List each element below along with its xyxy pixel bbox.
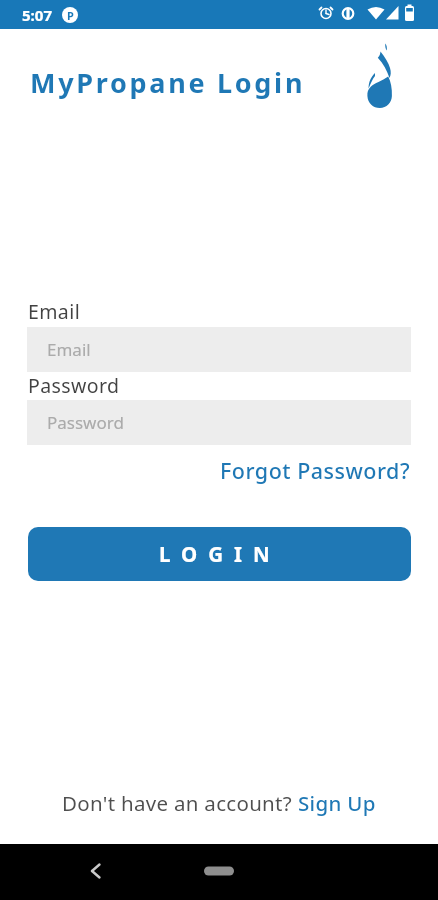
button[interactable]: Sign Up <box>298 789 376 817</box>
staticText: Sign Up <box>298 789 376 817</box>
staticText: Password <box>28 372 120 399</box>
button[interactable]: LOGIN <box>28 527 411 581</box>
staticText: Forgot Password? <box>220 456 411 485</box>
staticText: Password <box>47 411 124 434</box>
staticText: Email <box>47 338 91 361</box>
staticText: Don't have an account? <box>62 789 298 817</box>
staticText: Email <box>28 298 81 325</box>
staticText: LOGIN <box>159 540 281 568</box>
button[interactable]: Password <box>27 400 411 445</box>
button[interactable]: Email <box>27 327 411 372</box>
staticText: P <box>67 8 74 23</box>
staticText: 5:07 <box>22 5 52 25</box>
button[interactable] <box>195 858 243 884</box>
button[interactable]: Forgot Password? <box>220 456 411 485</box>
staticText: MyPropane Login <box>30 64 306 101</box>
button[interactable] <box>80 856 112 888</box>
